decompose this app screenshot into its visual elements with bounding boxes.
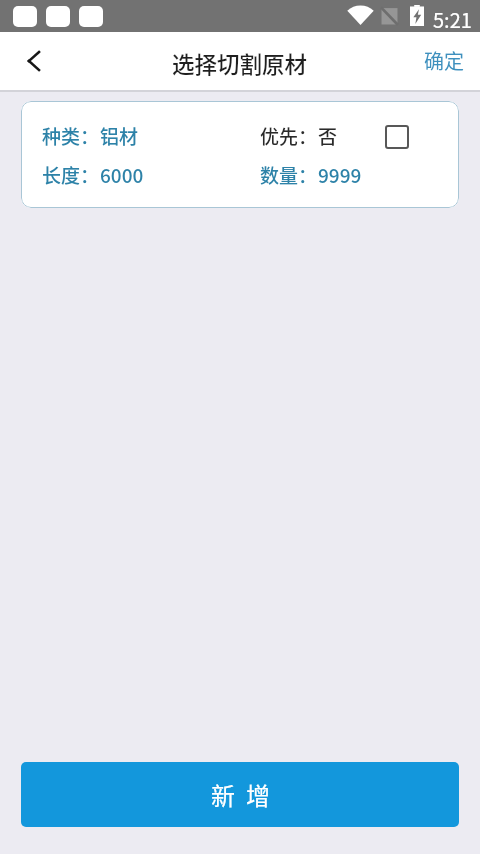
staticText: 9999 (318, 161, 362, 189)
staticText: 确定 (424, 46, 464, 75)
staticText: 铝材 (100, 122, 139, 150)
staticText: 5:21 (433, 5, 472, 34)
staticText: 选择切割原材 (172, 47, 308, 80)
staticText: 优先： (260, 122, 318, 150)
button[interactable]: 确定 (404, 32, 480, 90)
button[interactable]: 返回 (0, 32, 58, 90)
staticText: 数量： (260, 161, 318, 189)
button[interactable]: 优先 (385, 125, 409, 149)
staticText: 种类： (42, 122, 100, 150)
other: WiFi (348, 6, 373, 25)
staticText: 6000 (100, 161, 144, 189)
staticText: 否 (318, 122, 338, 150)
staticText: 长度： (42, 161, 100, 189)
staticText: 新 增 (211, 777, 270, 812)
button[interactable]: 种类： (21, 101, 459, 208)
button[interactable]: 新 增 (21, 762, 459, 827)
